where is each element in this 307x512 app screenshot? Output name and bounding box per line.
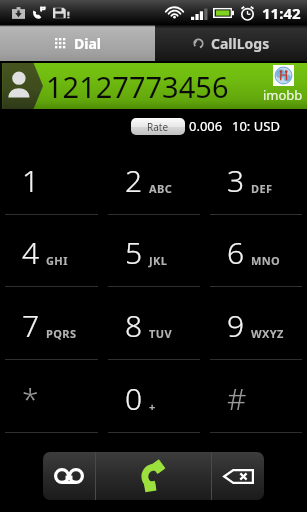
button[interactable]: Rate: [131, 118, 185, 135]
staticText: *: [22, 378, 39, 419]
button[interactable]: Call: [96, 452, 211, 500]
staticText: 9: [227, 305, 245, 346]
staticText: Dial: [74, 34, 101, 53]
staticText: #: [227, 378, 247, 419]
button[interactable]: *: [0, 360, 103, 432]
button[interactable]: 2: [103, 143, 205, 214]
staticText: 5: [125, 232, 143, 273]
staticText: CallLogs: [211, 34, 270, 53]
button[interactable]: Voicemail: [43, 452, 95, 500]
staticText: TUV: [149, 326, 173, 341]
staticText: 6: [227, 232, 245, 273]
staticText: WXYZ: [251, 326, 284, 341]
staticText: 0.006: [189, 117, 223, 135]
button[interactable]: CallLogs: [155, 25, 307, 61]
button[interactable]: 9: [205, 287, 307, 359]
button[interactable]: Dial: [0, 25, 155, 61]
staticText: PQRS: [46, 326, 77, 341]
button[interactable]: 6: [205, 215, 307, 286]
staticText: +: [149, 399, 156, 414]
staticText: 3: [227, 160, 245, 201]
staticText: 10: USD: [232, 117, 280, 135]
button[interactable]: Contacts: [0, 63, 43, 109]
staticText: Rate: [147, 120, 169, 134]
staticText: 12127773456: [46, 67, 229, 106]
staticText: 0: [125, 378, 143, 419]
button[interactable]: 8: [103, 287, 205, 359]
staticText: 4: [22, 232, 40, 273]
staticText: JKL: [149, 253, 168, 268]
button[interactable]: 0: [103, 360, 205, 432]
staticText: MNO: [251, 253, 281, 268]
button[interactable]: Delete: [212, 452, 264, 500]
staticText: 8: [125, 305, 143, 346]
button[interactable]: #: [205, 360, 307, 432]
button[interactable]: 1: [0, 143, 103, 214]
button[interactable]: 5: [103, 215, 205, 286]
staticText: 1: [22, 160, 40, 201]
staticText: GHI: [46, 253, 68, 268]
staticText: 2: [125, 160, 143, 201]
staticText: imobb: [263, 86, 303, 104]
button[interactable]: 4: [0, 215, 103, 286]
staticText: ABC: [149, 181, 173, 196]
staticText: DEF: [251, 181, 273, 196]
button[interactable]: 7: [0, 287, 103, 359]
button[interactable]: 3: [205, 143, 307, 214]
staticText: 11:42: [262, 3, 301, 23]
staticText: 7: [22, 305, 40, 346]
